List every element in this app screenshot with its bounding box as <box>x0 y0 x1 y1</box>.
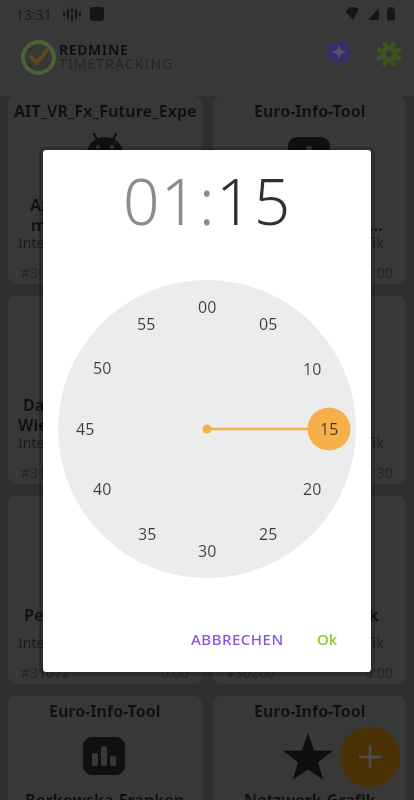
staticText: Euro-Info-Tool <box>254 500 366 522</box>
staticText: Datenexporte 24… <box>236 214 383 236</box>
staticText: Interne Projekte-Übersicht <box>18 633 193 652</box>
staticText: Euro-Info-Tool <box>49 700 161 722</box>
staticText: 01 <box>123 157 199 244</box>
staticText: Interne Projekte-Übersicht <box>18 233 193 252</box>
staticText: #30661 <box>21 263 71 282</box>
staticText: 40 <box>93 478 112 500</box>
staticText: TIMETRACKING <box>59 54 174 73</box>
button[interactable] <box>340 727 400 787</box>
staticText: 35 <box>138 523 157 545</box>
staticText: 1:00 <box>365 263 393 282</box>
button[interactable]: Ok <box>309 619 345 659</box>
staticText: Azure-Migrationen <box>30 194 180 216</box>
staticText: Europa-Netzwerk <box>240 604 379 626</box>
staticText: Europäische Infografik <box>235 233 384 252</box>
staticText: Ok <box>317 629 338 649</box>
button[interactable]: Intern-Tool <box>8 496 202 684</box>
staticText: ABBRECHEN <box>191 629 284 649</box>
button[interactable]: Euro-Info-Tool <box>213 496 406 684</box>
staticText: 25 <box>259 523 278 545</box>
staticText: 0:00 <box>161 663 189 682</box>
button[interactable]: AIT_VR_Fx_Future_Expe <box>8 96 202 284</box>
button[interactable] <box>326 40 354 68</box>
staticText: 15 <box>216 157 292 244</box>
staticText: Euro-Info-Tool <box>254 700 366 722</box>
staticText: Berichte (Print) <box>249 414 371 436</box>
staticText: Euro-Info-Tool <box>254 100 366 122</box>
button[interactable]: Intern-Tool <box>8 296 202 484</box>
button[interactable]: Euro-Info-Tool <box>8 696 202 800</box>
staticText: 20 <box>303 478 322 500</box>
staticText: REDMINE <box>59 40 129 59</box>
staticText: 10 <box>303 358 322 380</box>
staticText: #30200 <box>226 663 276 682</box>
staticText: 00 <box>198 296 217 318</box>
staticText: #31072 <box>21 663 71 682</box>
staticText: 50 <box>93 357 112 379</box>
staticText: mit Datenabgleich <box>31 214 179 236</box>
staticText: Europäische Infografik <box>235 433 384 452</box>
staticText: Interne Projekte-Übersicht <box>18 433 193 452</box>
staticText: : <box>199 157 216 244</box>
staticText: Netzwerk-Grafik <box>244 789 376 800</box>
staticText: Euro-Info-Tool <box>254 300 366 322</box>
staticText: Intern-Tool <box>61 300 150 322</box>
staticText: 55 <box>137 313 156 335</box>
staticText: 05 <box>259 313 278 335</box>
staticText: Infografiken <box>259 194 360 216</box>
button[interactable]: ABBRECHEN <box>172 619 302 659</box>
staticText: 1:30 <box>365 463 393 482</box>
staticText: Intern-Tool <box>61 500 150 522</box>
staticText: Borkowska-Franken <box>25 789 185 800</box>
staticText: 30 <box>198 540 217 562</box>
staticText: #31058 <box>21 463 71 482</box>
staticText: 15 <box>320 418 339 440</box>
button[interactable] <box>376 41 402 67</box>
button[interactable]: Euro-Info-Tool <box>213 696 406 800</box>
staticText: Personalverwaltung <box>24 604 186 626</box>
staticText: Wiedervorlagesystem <box>18 414 193 436</box>
staticText: Europäische Infografik <box>235 633 384 652</box>
staticText: Berichtsmodule <box>246 394 373 416</box>
staticText: 45 <box>76 418 95 440</box>
button[interactable]: Euro-Info-Tool <box>213 296 406 484</box>
staticText: AIT_VR_Fx_Future_Expe <box>14 100 197 122</box>
staticText: Dashboard-Redesign <box>23 394 188 416</box>
staticText: 0:00 <box>365 663 393 682</box>
staticText: 13:31 <box>16 5 52 24</box>
button[interactable]: Euro-Info-Tool <box>213 96 406 284</box>
